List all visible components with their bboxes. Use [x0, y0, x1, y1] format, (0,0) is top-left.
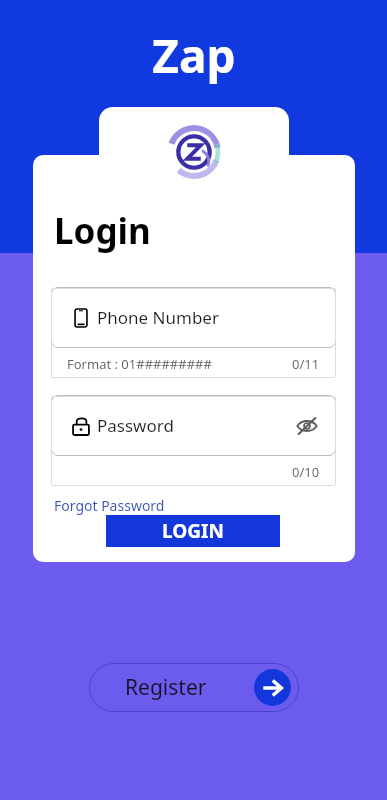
staticText: Password — [97, 414, 174, 437]
staticText: 0/11 — [292, 355, 320, 373]
button[interactable]: Show password — [294, 413, 320, 439]
button[interactable]: Phone Number — [51, 287, 336, 348]
staticText: 0/10 — [292, 463, 320, 481]
staticText: Login — [54, 207, 151, 255]
button[interactable]: Register — [89, 663, 299, 712]
staticText: Register — [125, 673, 207, 702]
button[interactable]: Password — [51, 395, 336, 456]
button[interactable]: LOGIN — [106, 515, 280, 547]
button[interactable]: Forgot Password — [52, 494, 167, 517]
staticText: Phone Number — [97, 306, 219, 329]
staticText: Format : 01######### — [67, 355, 212, 373]
staticText: LOGIN — [162, 518, 224, 544]
staticText: Forgot Password — [54, 496, 165, 515]
staticText: Zap — [152, 24, 236, 87]
